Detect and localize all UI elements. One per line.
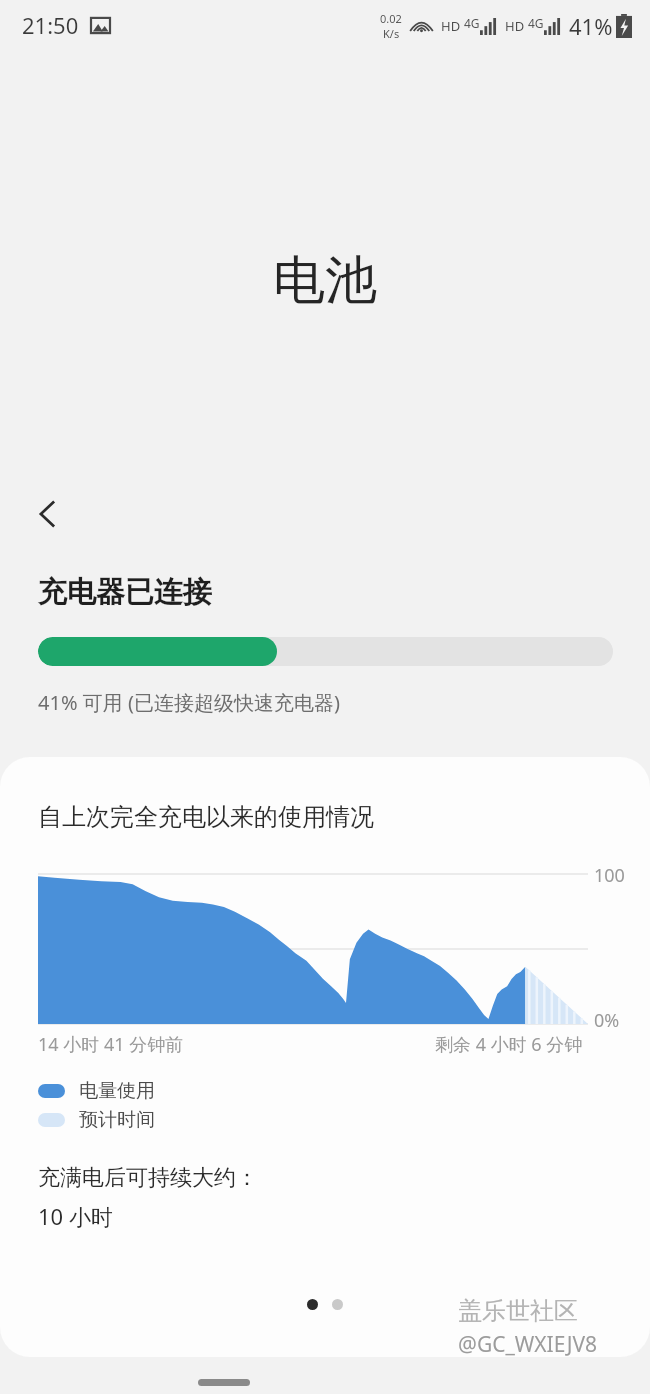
staticText: HD [505,17,525,35]
staticText: 14 小时 41 分钟前 [38,1032,184,1057]
staticText: 4G [464,15,480,31]
staticText: @GC_WXIEJV8 [458,1330,597,1359]
staticText: 充满电后可持续大约： [38,1164,258,1192]
staticText: 100 [594,863,625,888]
staticText: 电量使用 [79,1079,155,1103]
staticText: 预计时间 [79,1108,155,1132]
staticText: 21:50 [22,10,79,40]
staticText: 充电器已连接 [38,574,212,611]
staticText: 41% [569,11,613,41]
staticText: 41% 可用 (已连接超级快速充电器) [38,689,340,716]
staticText: 电池 [273,248,377,314]
staticText: 0% [594,1008,620,1033]
staticText: K/s [383,26,400,41]
button[interactable]: Page 2 [332,1299,343,1310]
button[interactable]: Page 1 [307,1299,318,1310]
staticText: 0.02 [380,11,402,26]
staticText: 10 小时 [38,1201,113,1231]
staticText: HD [441,17,461,35]
staticText: 自上次完全充电以来的使用情况 [38,802,374,832]
staticText: 4G [528,15,544,31]
button[interactable]: Back [16,482,80,546]
staticText: 盖乐世社区 [458,1296,578,1326]
staticText: 剩余 4 小时 6 分钟 [435,1032,583,1057]
